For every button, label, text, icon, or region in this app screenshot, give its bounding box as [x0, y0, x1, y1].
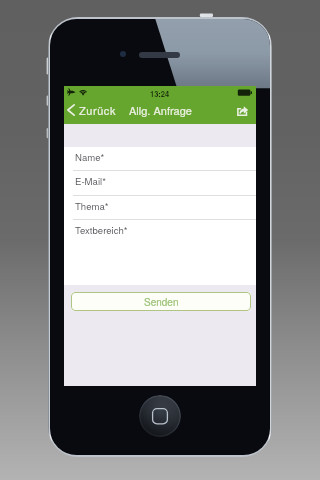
staticText: Senden	[144, 295, 179, 309]
button[interactable]: Textbereich*	[64, 220, 256, 244]
button[interactable]: E-Mail*	[64, 171, 256, 195]
staticText: Thema*	[75, 199, 109, 213]
staticText: Textbereich*	[75, 223, 128, 237]
button[interactable]: Zurück	[64, 98, 121, 124]
button[interactable]: Senden	[71, 292, 251, 311]
staticText: Name*	[75, 150, 105, 164]
button[interactable]: Name*	[64, 147, 256, 170]
staticText: Allg. Anfrage	[129, 102, 192, 118]
button[interactable]: Thema*	[64, 196, 256, 219]
staticText: 13:24	[150, 89, 170, 100]
button[interactable]: Home	[139, 395, 181, 437]
button[interactable]: Share	[231, 98, 256, 124]
staticText: E-Mail*	[75, 174, 106, 188]
staticText: Zurück	[79, 102, 116, 118]
